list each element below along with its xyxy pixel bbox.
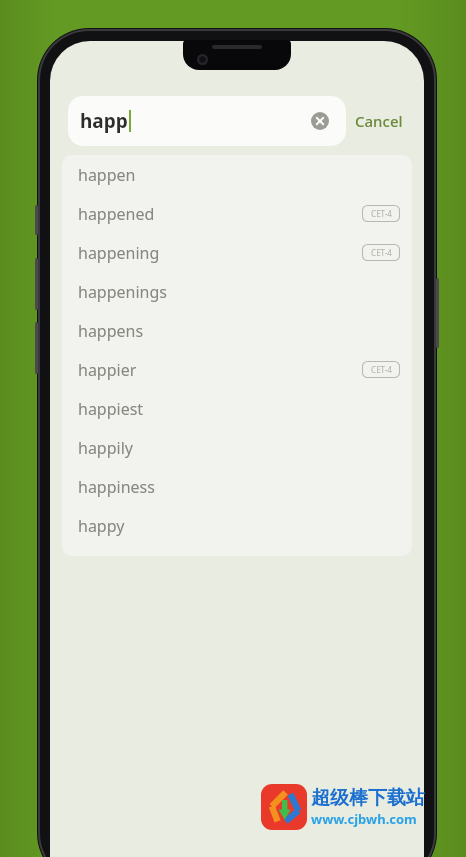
staticText: happy bbox=[78, 515, 125, 537]
staticText: happen bbox=[78, 164, 136, 186]
button[interactable]: happy bbox=[62, 506, 412, 545]
staticText: happ bbox=[80, 108, 128, 134]
button[interactable]: happened bbox=[62, 194, 412, 233]
staticText: happily bbox=[78, 437, 133, 459]
button[interactable]: happens bbox=[62, 311, 412, 350]
staticText: happenings bbox=[78, 281, 167, 303]
button[interactable]: Clear text bbox=[306, 107, 334, 135]
button[interactable]: happenings bbox=[62, 272, 412, 311]
staticText: happening bbox=[78, 242, 160, 264]
staticText: happens bbox=[78, 320, 144, 342]
staticText: CET-4 bbox=[371, 208, 392, 219]
button[interactable]: happily bbox=[62, 428, 412, 467]
button[interactable]: happen bbox=[62, 155, 412, 194]
staticText: happier bbox=[78, 359, 137, 381]
button[interactable]: happiness bbox=[62, 467, 412, 506]
staticText: happened bbox=[78, 203, 155, 225]
staticText: CET-4 bbox=[371, 364, 392, 375]
staticText: www.cjbwh.com bbox=[311, 810, 417, 828]
button[interactable]: happening bbox=[62, 233, 412, 272]
button[interactable]: happiest bbox=[62, 389, 412, 428]
button[interactable]: Cancel bbox=[346, 103, 412, 139]
staticText: CET-4 bbox=[371, 247, 392, 258]
button[interactable]: happier bbox=[62, 350, 412, 389]
button[interactable]: happ bbox=[68, 96, 346, 146]
staticText: Cancel bbox=[355, 111, 403, 131]
staticText: 超级棒下载站 bbox=[311, 786, 425, 810]
staticText: happiness bbox=[78, 476, 155, 498]
staticText: happiest bbox=[78, 398, 144, 420]
